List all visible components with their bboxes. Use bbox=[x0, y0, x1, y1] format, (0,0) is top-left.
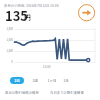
button[interactable]: 1年 bbox=[62, 77, 70, 84]
staticText: 2024年7月12日 15:00 bbox=[26, 3, 59, 8]
staticText: 1日 bbox=[14, 78, 20, 83]
button[interactable]: 1週 bbox=[30, 77, 40, 84]
staticText: 1,000 bbox=[1, 38, 13, 42]
staticText: 1年 bbox=[63, 78, 69, 83]
staticText: 円 bbox=[24, 12, 31, 22]
staticText: 1週 bbox=[32, 78, 38, 83]
staticText: 135 bbox=[5, 6, 29, 25]
staticText: 今日までの取引実績量 bbox=[50, 90, 84, 95]
staticText: 1,000 bbox=[1, 27, 13, 31]
staticText: 1,000 bbox=[1, 49, 13, 53]
staticText: 0 bbox=[1, 60, 13, 64]
button[interactable]: 1ヶ月 bbox=[46, 77, 58, 84]
button[interactable]: 1日 bbox=[10, 77, 24, 84]
staticText: 参考の小売価 bbox=[4, 3, 25, 8]
staticText: 直近の取引価格の推移 bbox=[5, 90, 39, 95]
staticText: 1ヶ月 bbox=[47, 78, 57, 83]
staticText: 12:00 bbox=[43, 65, 51, 69]
button[interactable]: 詳細を見る bbox=[78, 4, 95, 21]
